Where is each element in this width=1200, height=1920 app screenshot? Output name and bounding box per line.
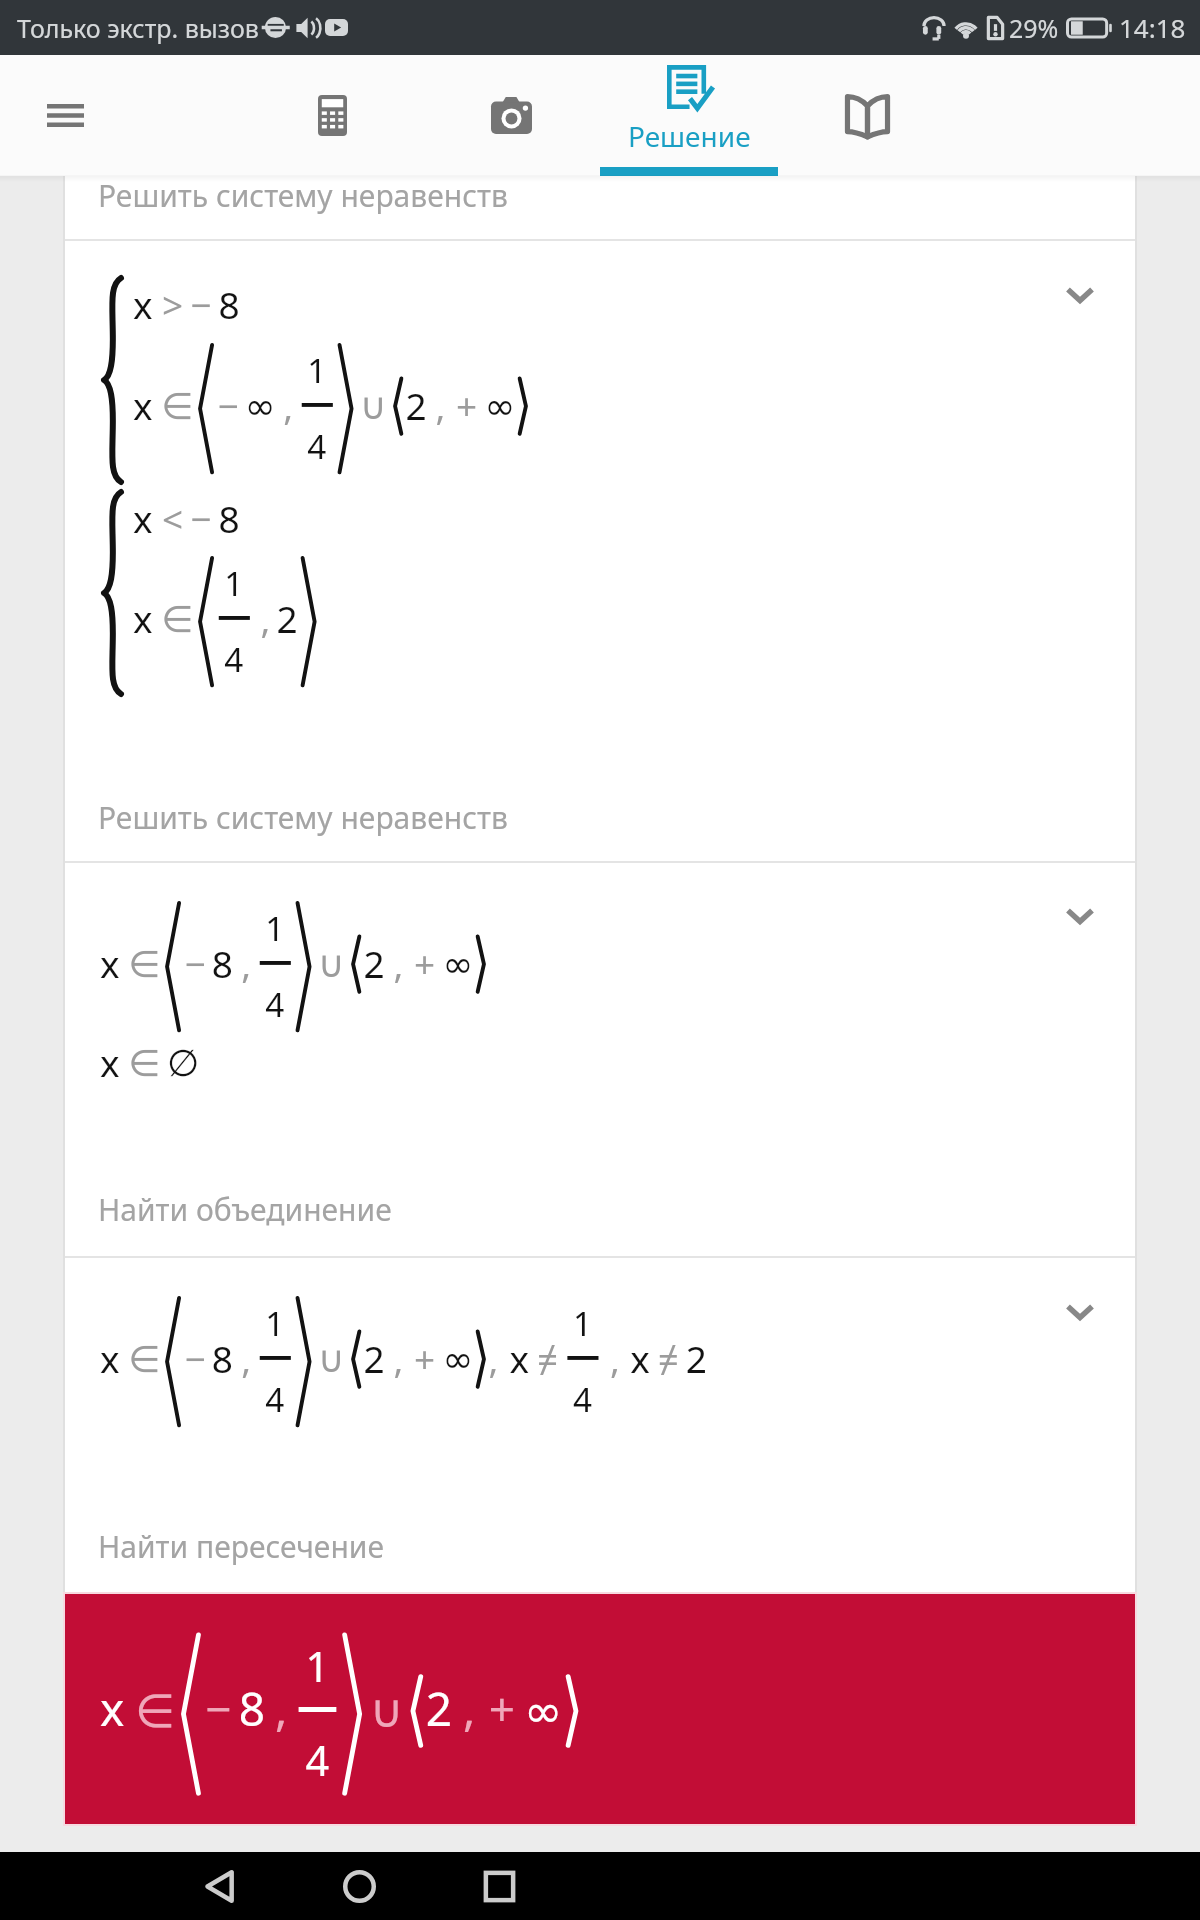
staticText: Решение — [628, 117, 751, 155]
button[interactable]: Home — [325, 1852, 393, 1920]
button[interactable]: Camera — [422, 55, 600, 176]
staticText: Только экстр. вызов — [17, 11, 259, 45]
button[interactable]: Step 3 result — [65, 1257, 1135, 1594]
button[interactable]: Решить систему неравенств — [65, 797, 1135, 862]
button[interactable]: Menu — [0, 55, 130, 176]
staticText: Найти пересечение — [98, 1526, 384, 1567]
button[interactable]: Expand step — [1056, 271, 1104, 319]
button[interactable]: Step 2 result — [65, 862, 1135, 1257]
button[interactable]: Step 1 result — [65, 240, 1135, 862]
button[interactable]: Решение — [600, 55, 778, 176]
staticText: Найти объединение — [98, 1189, 392, 1230]
button[interactable]: Recents — [465, 1852, 533, 1920]
button[interactable]: Back — [186, 1852, 254, 1920]
staticText: Решить систему неравенств — [98, 175, 508, 216]
button[interactable]: Найти пересечение — [65, 1526, 1135, 1594]
button[interactable]: Final answer — [65, 1594, 1135, 1824]
staticText: 29% — [1009, 11, 1059, 45]
staticText: Решить систему неравенств — [98, 797, 508, 838]
button[interactable]: Book — [778, 55, 956, 176]
button[interactable]: Решить систему неравенств — [65, 175, 1135, 240]
button[interactable]: Expand step — [1056, 1288, 1104, 1336]
button[interactable]: Найти объединение — [65, 1189, 1135, 1257]
button[interactable]: Calculator — [243, 55, 421, 176]
staticText: 14:18 — [1119, 10, 1186, 45]
button[interactable]: Expand step — [1056, 892, 1104, 940]
